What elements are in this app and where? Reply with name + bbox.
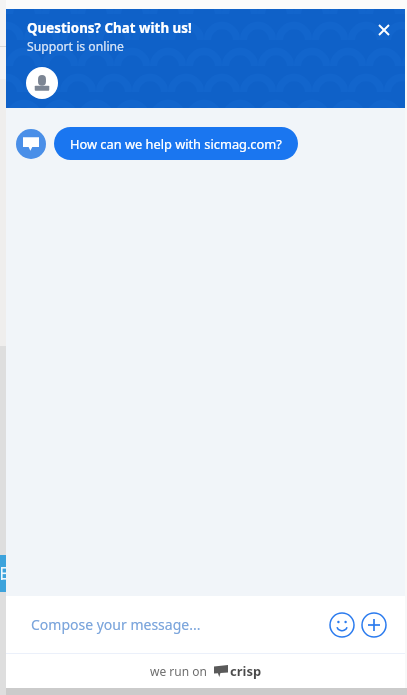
staticText: Compose your message... (31, 615, 201, 634)
staticText: Support is online (27, 38, 124, 55)
staticText: crisp (230, 662, 262, 680)
button[interactable]: Insert emoji (329, 612, 355, 638)
button[interactable]: How can we help with sicmag.com? (54, 127, 298, 160)
button[interactable]: Close (371, 17, 397, 43)
button[interactable]: Add attachment (361, 612, 387, 638)
staticText: we run on (150, 663, 207, 679)
staticText: Questions? Chat with us! (27, 19, 192, 37)
staticText: How can we help with sicmag.com? (70, 135, 282, 152)
